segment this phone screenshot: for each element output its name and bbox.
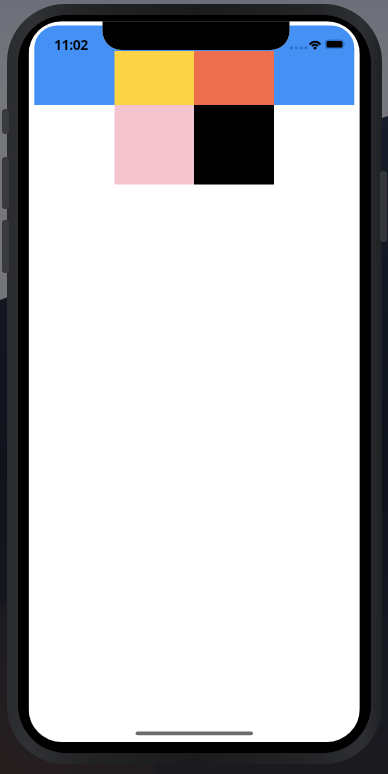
staticText: 11:02	[54, 35, 88, 54]
